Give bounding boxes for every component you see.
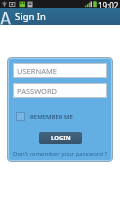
button[interactable]: LOGIN — [39, 132, 82, 144]
staticText: LOGIN — [51, 134, 71, 142]
staticText: REMEMBER ME — [30, 113, 73, 121]
staticText: Don't remember your password ? — [13, 150, 107, 158]
staticText: Sign In — [15, 10, 46, 23]
button[interactable]: REMEMBER ME — [16, 112, 73, 121]
staticText: 19:02 — [98, 0, 119, 8]
button[interactable]: Don't remember your password ? — [8, 149, 112, 158]
staticText: PASSWORD — [17, 86, 58, 96]
button[interactable]: PASSWORD — [13, 83, 107, 98]
other: App logo — [0, 11, 12, 25]
button[interactable]: USERNAME — [13, 63, 107, 78]
staticText: USERNAME — [17, 66, 57, 76]
